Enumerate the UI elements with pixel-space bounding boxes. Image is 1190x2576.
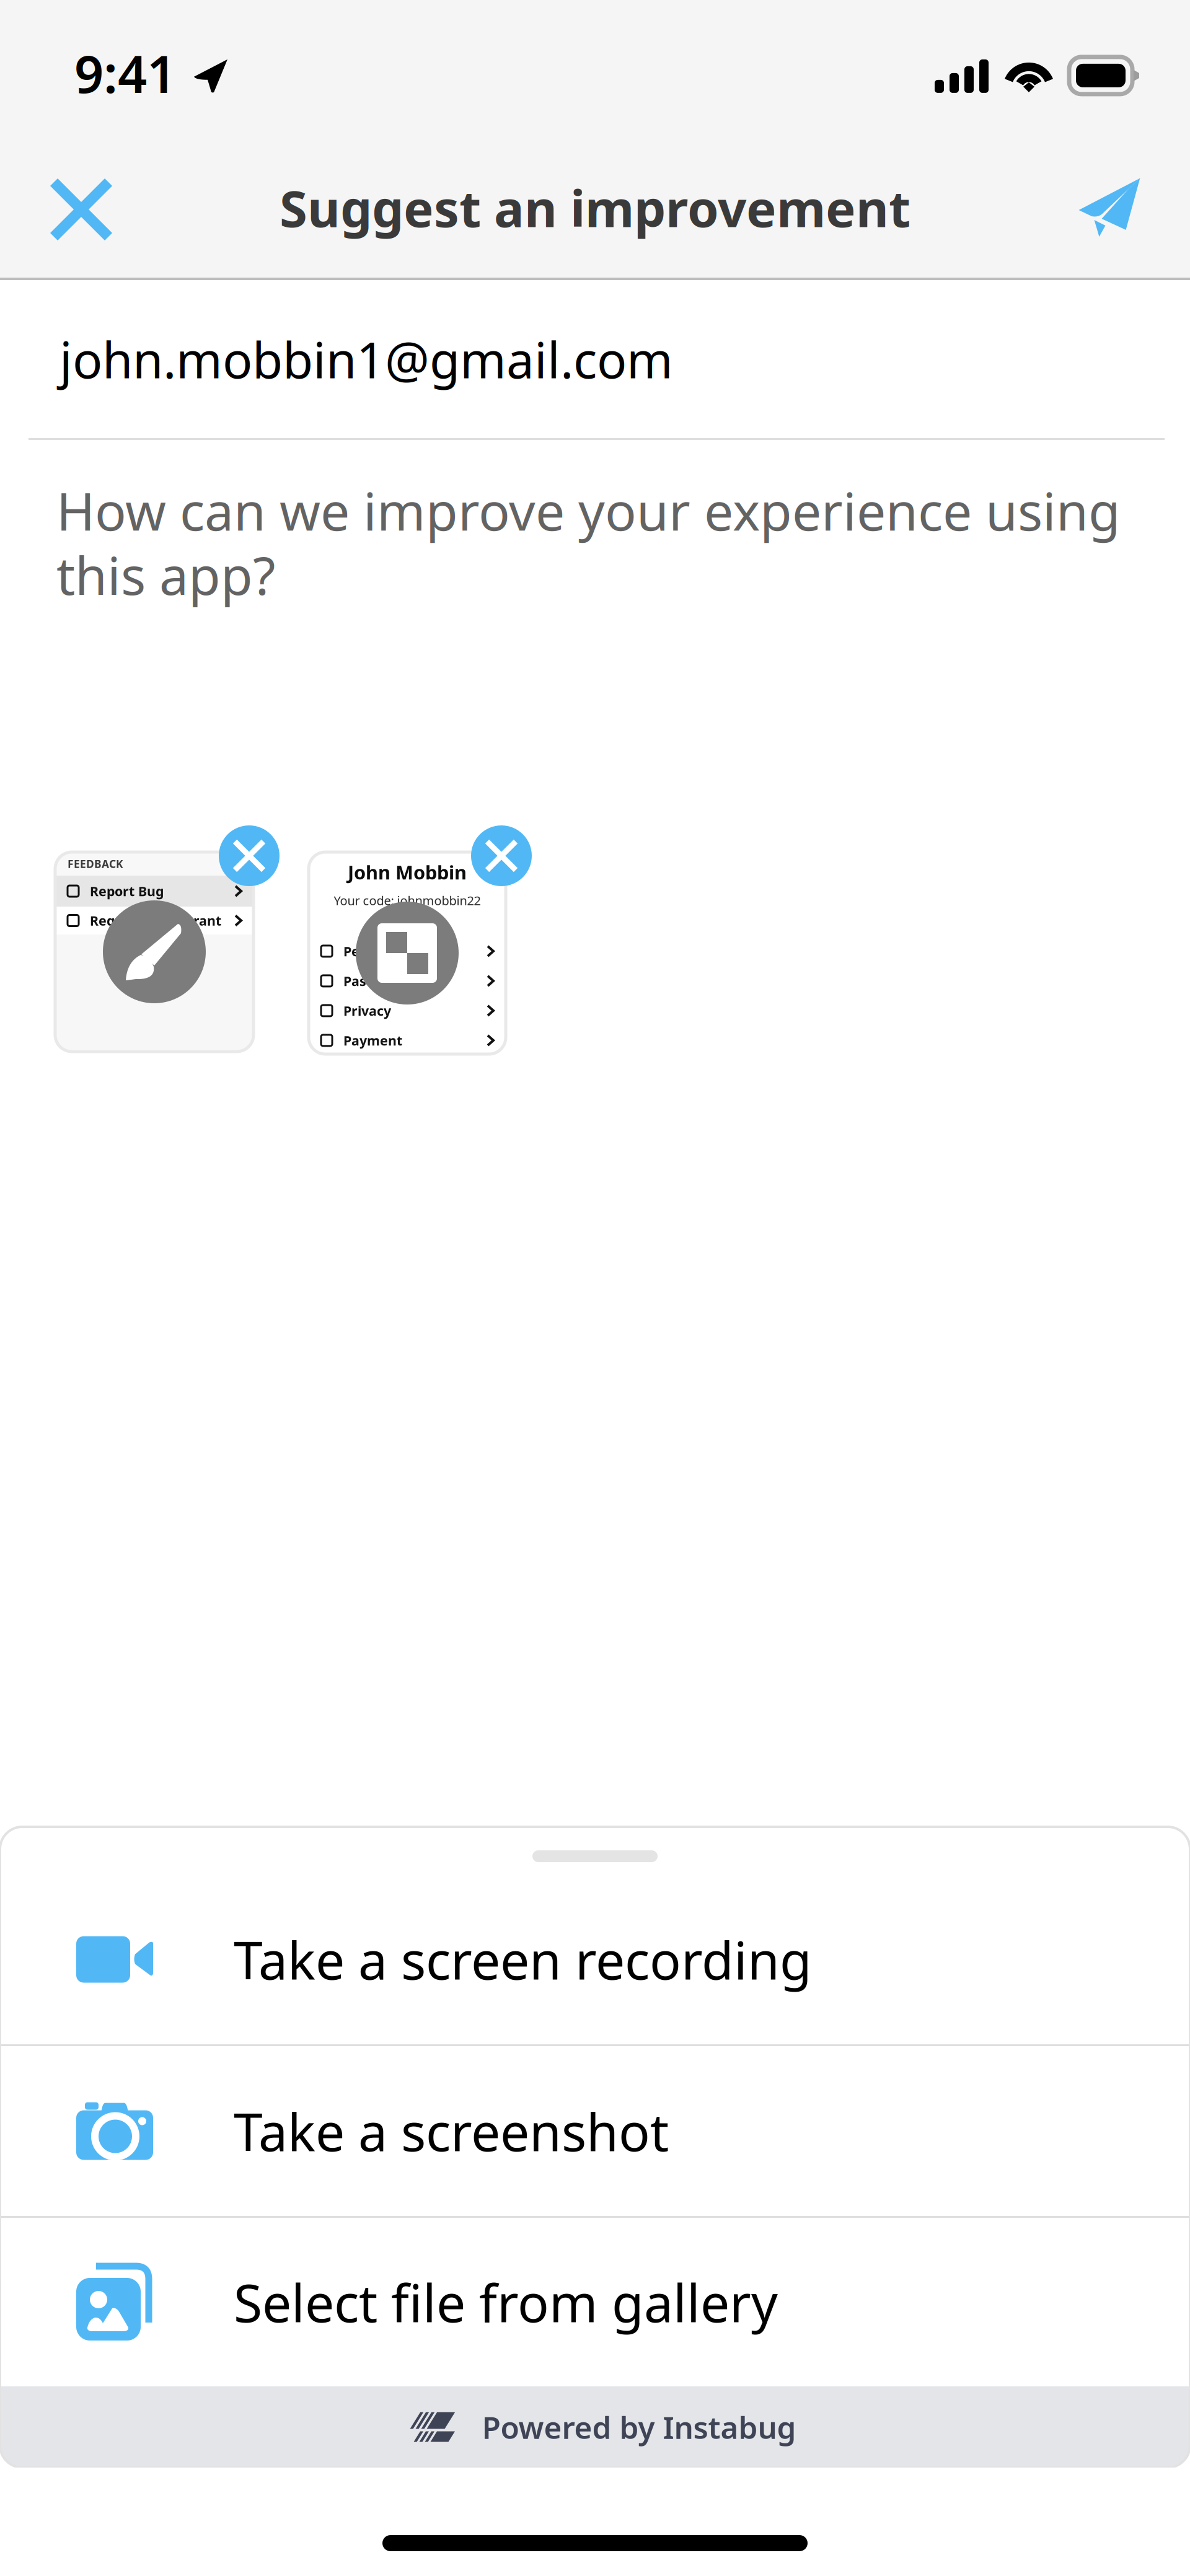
button[interactable]: john.mobbin1@gmail.com: [0, 280, 1190, 438]
staticText: Customize: [377, 912, 438, 929]
staticText: FEEDBACK: [68, 857, 123, 871]
staticText: Past Orders: [343, 972, 421, 990]
button[interactable]: Close: [29, 157, 134, 262]
button[interactable]: Remove attachment: [219, 825, 280, 886]
staticText: Report Bug: [90, 882, 164, 900]
staticText: Your code: johnmobbin22: [334, 892, 481, 909]
button[interactable]: Remove attachment: [471, 825, 532, 886]
button[interactable]: Take a screenshot: [0, 2046, 1190, 2216]
staticText: Take a screenshot: [234, 2096, 669, 2166]
staticText: John Mobbin: [348, 860, 467, 885]
staticText: Privacy: [343, 1002, 391, 1019]
staticText: Personal: [343, 942, 401, 960]
staticText: Powered by Instabug: [482, 2407, 796, 2447]
staticText: Request Restaurant: [90, 912, 221, 929]
staticText: this app?: [56, 540, 275, 609]
button[interactable]: Send: [1057, 155, 1162, 260]
button[interactable]: Select file from gallery: [0, 2218, 1190, 2386]
staticText: Take a screen recording: [234, 1925, 812, 1994]
staticText: john.mobbin1@gmail.com: [59, 326, 673, 392]
staticText: Payment: [343, 1032, 402, 1049]
staticText: Select file from gallery: [234, 2268, 778, 2337]
staticText: Suggest an improvement: [280, 174, 910, 241]
button[interactable]: Take a screen recording: [0, 1875, 1190, 2044]
staticText: 9:41: [74, 39, 176, 107]
staticText: How can we improve your experience using: [56, 476, 1121, 545]
